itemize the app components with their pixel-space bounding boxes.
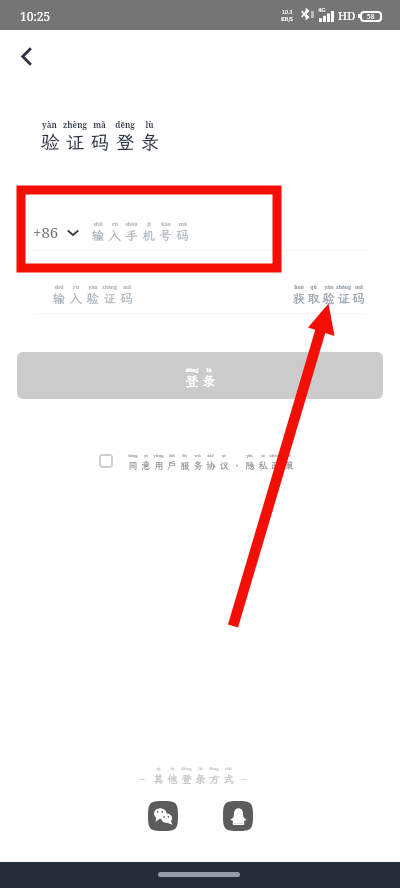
staticText: 用	[154, 459, 164, 472]
staticText: 码	[90, 129, 110, 154]
staticText: 其	[153, 772, 164, 786]
staticText: HD	[338, 8, 356, 24]
staticText: 验	[322, 290, 335, 306]
staticText: 58	[367, 12, 375, 21]
button[interactable]: Back	[4, 34, 48, 78]
staticText: KB/S	[281, 15, 294, 22]
button[interactable]: QQ login	[223, 801, 253, 831]
staticText: dēng	[181, 766, 192, 772]
staticText: shǒu	[125, 221, 138, 228]
staticText: 手	[125, 227, 138, 243]
button[interactable]: Agree to terms	[99, 454, 113, 468]
staticText: fāng	[209, 766, 219, 772]
staticText: mǎ	[123, 284, 131, 291]
staticText: 登	[181, 772, 192, 786]
staticText: 证	[103, 290, 116, 306]
staticText: cè	[286, 453, 291, 459]
staticText: shū	[93, 221, 103, 228]
staticText: yì	[222, 453, 226, 459]
staticText: mǎ	[93, 119, 106, 130]
staticText: yǐn	[246, 453, 253, 459]
staticText: zhèng	[269, 453, 282, 459]
staticText: zhèng	[336, 284, 351, 291]
staticText: wù	[194, 453, 201, 459]
staticText: qǔ	[310, 284, 317, 291]
staticText: dēng	[185, 366, 199, 373]
button[interactable]: +86	[33, 222, 79, 242]
staticText: 户	[167, 459, 177, 472]
staticText: zhèng	[102, 284, 117, 291]
staticText: hào	[161, 221, 171, 228]
staticText: 获	[292, 290, 305, 306]
staticText: lù	[198, 766, 203, 772]
staticText: lù	[145, 119, 154, 130]
staticText: 私	[258, 459, 268, 472]
staticText: 隐	[245, 459, 255, 472]
staticText: 码	[352, 290, 365, 306]
staticText: dēng	[115, 119, 135, 130]
staticText: 证	[65, 129, 85, 154]
staticText: 入	[108, 227, 121, 243]
staticText: --	[139, 772, 145, 784]
staticText: lù	[206, 366, 212, 373]
button[interactable]: huò	[291, 284, 366, 307]
staticText: yàn	[88, 284, 98, 291]
staticText: 入	[69, 290, 82, 306]
staticText: 号	[159, 227, 172, 243]
staticText: 、	[232, 459, 242, 472]
staticText: sī	[261, 453, 265, 459]
staticText: 式	[223, 772, 234, 786]
staticText: 政	[271, 459, 281, 472]
staticText: 验	[40, 129, 60, 154]
staticText: rù	[112, 221, 118, 228]
staticText: fú	[182, 453, 187, 459]
staticText: 登	[115, 129, 135, 154]
staticText: 服	[180, 459, 190, 472]
staticText: zhèng	[63, 119, 87, 130]
staticText: 意	[141, 459, 151, 472]
staticText: 机	[142, 227, 155, 243]
staticText: 方	[209, 772, 220, 786]
staticText: yì	[144, 453, 148, 459]
staticText: 10.1	[282, 8, 293, 15]
staticText: huò	[294, 284, 304, 291]
staticText: shū	[54, 284, 64, 291]
staticText: 协	[206, 459, 216, 472]
staticText: tā	[170, 766, 175, 772]
staticText: 同	[128, 459, 138, 472]
staticText: --	[241, 772, 247, 784]
staticText: mǎ	[179, 221, 187, 228]
staticText: 输	[52, 290, 65, 306]
staticText: xié	[207, 453, 214, 459]
staticText: 登	[185, 372, 199, 390]
staticText: 验	[86, 290, 99, 306]
staticText: 4G	[318, 6, 326, 14]
staticText: 输	[91, 227, 104, 243]
staticText: 录	[140, 129, 160, 154]
button[interactable]: WeChat login	[148, 801, 178, 831]
staticText: yàn	[324, 284, 334, 291]
staticText: shì	[225, 766, 232, 772]
staticText: 取	[307, 290, 320, 306]
staticText: 10:25	[20, 8, 51, 24]
button[interactable]: tóng	[126, 453, 295, 472]
staticText: qí	[156, 766, 161, 772]
staticText: yàn	[42, 119, 57, 130]
staticText: 务	[193, 459, 203, 472]
staticText: 码	[120, 290, 133, 306]
staticText: yòng	[153, 453, 164, 459]
staticText: +86	[33, 222, 59, 242]
staticText: 议	[219, 459, 229, 472]
staticText: 策	[284, 459, 294, 472]
staticText: tóng	[128, 453, 138, 459]
staticText: 码	[176, 227, 189, 243]
staticText: 录	[202, 372, 216, 390]
staticText: rù	[73, 284, 79, 291]
staticText: 证	[337, 290, 350, 306]
staticText: hù	[169, 453, 175, 459]
staticText: jī	[147, 221, 151, 228]
staticText: 录	[195, 772, 206, 786]
staticText: 他	[167, 772, 178, 786]
staticText: mǎ	[355, 284, 363, 291]
button[interactable]: dēng	[17, 352, 383, 399]
